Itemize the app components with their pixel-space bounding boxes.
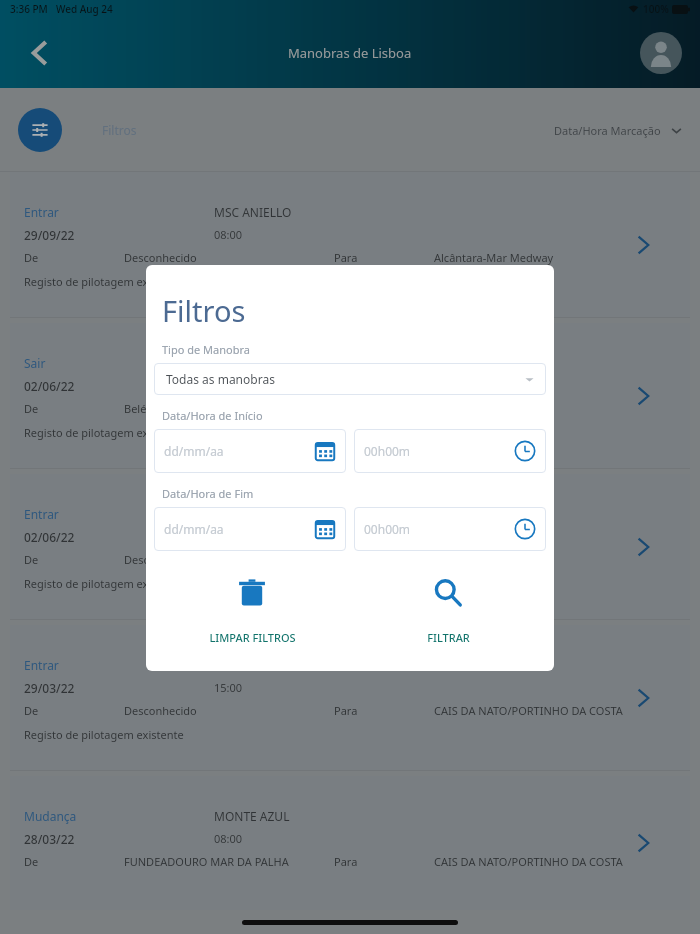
staticText: Para <box>334 250 434 265</box>
button[interactable]: dd/mm/aa <box>154 429 346 473</box>
staticText: Data/Hora de Fim <box>162 486 254 501</box>
staticText: MONTE AZUL <box>214 808 290 824</box>
staticText: dd/mm/aa <box>164 521 224 537</box>
staticText: Manobras de Lisboa <box>288 44 412 62</box>
staticText: Todas as manobras <box>166 371 275 387</box>
staticText: Desconhecido <box>124 703 334 718</box>
staticText: Alcântara-Mar Medway <box>434 250 554 265</box>
button[interactable]: Detalhes <box>626 530 660 564</box>
other: Escolher data <box>314 518 336 540</box>
staticText: Desconhecido <box>124 250 334 265</box>
staticText: 100% <box>643 2 669 16</box>
staticText: LIMPAR FILTROS <box>209 630 296 645</box>
staticText: Tipo de Manobra <box>162 342 250 357</box>
button[interactable]: Entrar <box>10 474 690 619</box>
staticText: 08:00 <box>214 227 243 242</box>
staticText: Entrar <box>24 204 214 220</box>
button[interactable]: Back <box>18 31 62 75</box>
staticText: Filtros <box>102 122 137 138</box>
staticText: 15:00 <box>214 680 243 695</box>
staticText: Registo de pilotagem existente <box>24 425 184 440</box>
staticText: FILTRAR <box>427 630 470 645</box>
staticText: Entrar <box>24 506 214 522</box>
button[interactable]: Detalhes <box>626 681 660 715</box>
staticText: Registo de pilotagem existente <box>24 576 184 591</box>
staticText: 28/03/22 <box>24 831 214 847</box>
button[interactable]: Sair <box>10 323 690 468</box>
staticText: Data/Hora Marcação <box>554 123 661 138</box>
staticText: Belé <box>124 401 334 416</box>
staticText: De <box>24 401 124 416</box>
button[interactable]: FILTRAR <box>350 576 546 645</box>
staticText: 02/06/22 <box>24 529 214 545</box>
staticText: De <box>24 552 124 567</box>
button[interactable]: Detalhes <box>626 826 660 860</box>
staticText: 00h00m <box>364 443 411 459</box>
staticText: MSC ANIELLO <box>214 204 292 220</box>
staticText: De <box>24 703 124 718</box>
staticText: Filtros <box>162 291 246 330</box>
staticText: Entrar <box>24 657 214 673</box>
button[interactable]: Detalhes <box>626 379 660 413</box>
staticText: CAIS DA NATO/PORTINHO DA COSTA <box>434 703 623 718</box>
button[interactable]: 00h00m <box>354 429 546 473</box>
other: Escolher hora <box>514 518 536 540</box>
button[interactable]: dd/mm/aa <box>154 507 346 551</box>
staticText: FUNDEADOURO MAR DA PALHA <box>124 854 334 869</box>
staticText: Desc <box>124 552 334 567</box>
other: Escolher data <box>314 440 336 462</box>
staticText: De <box>24 250 124 265</box>
staticText: Wed Aug 24 <box>56 2 113 16</box>
staticText: dd/mm/aa <box>164 443 224 459</box>
staticText: Registo de pilotagem existente <box>24 727 184 742</box>
button[interactable]: Entrar <box>10 172 690 317</box>
staticText: Mudança <box>24 808 214 824</box>
button[interactable]: Filtros <box>18 108 62 152</box>
staticText: Para <box>334 703 434 718</box>
button[interactable]: Entrar <box>10 625 690 770</box>
staticText: Data/Hora de Início <box>162 408 263 423</box>
button[interactable]: LIMPAR FILTROS <box>154 576 350 645</box>
button[interactable]: Profile <box>640 32 682 74</box>
other: Escolher hora <box>514 440 536 462</box>
button[interactable]: Data/Hora Marcação <box>554 123 682 138</box>
staticText: 29/09/22 <box>24 227 214 243</box>
staticText: 02/06/22 <box>24 378 214 394</box>
staticText: 00h00m <box>364 521 411 537</box>
staticText: 08:00 <box>214 831 243 846</box>
staticText: Registo de pilotagem existente <box>24 274 184 289</box>
staticText: 29/03/22 <box>24 680 214 696</box>
staticText: CAIS DA NATO/PORTINHO DA COSTA <box>434 854 623 869</box>
button[interactable]: Detalhes <box>626 228 660 262</box>
button[interactable]: Todas as manobras <box>154 363 546 395</box>
button[interactable]: Mudança <box>10 776 690 910</box>
staticText: 3:36 PM <box>10 2 48 16</box>
staticText: De <box>24 854 124 869</box>
button[interactable]: 00h00m <box>354 507 546 551</box>
staticText: Sair <box>24 355 214 371</box>
staticText: Para <box>334 854 434 869</box>
